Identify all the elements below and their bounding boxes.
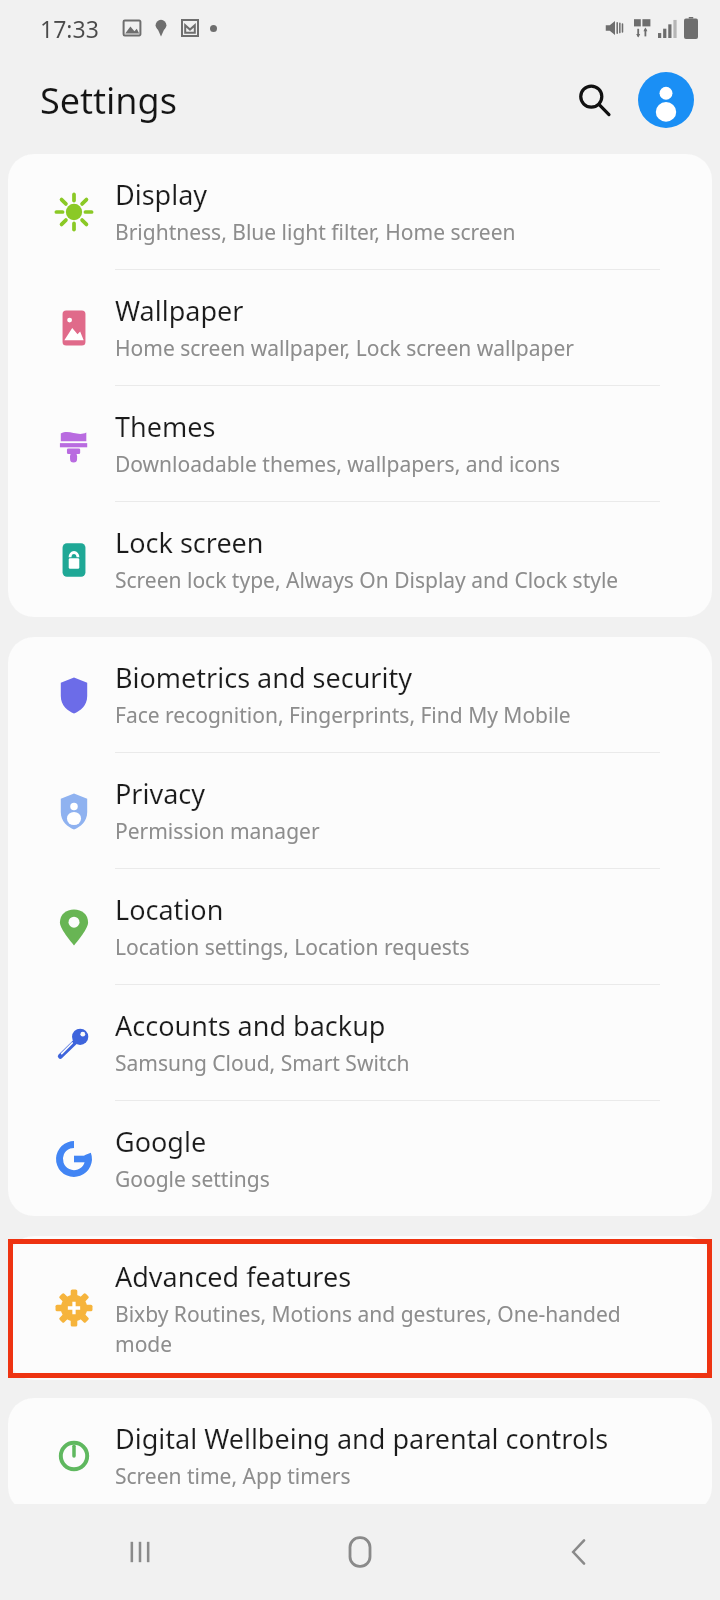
button[interactable]: Location <box>8 869 712 984</box>
button[interactable]: Google <box>8 1101 712 1216</box>
button[interactable]: Recent apps <box>60 1504 220 1600</box>
button[interactable]: Wallpaper <box>8 270 712 385</box>
staticText: Brightness, Blue light filter, Home scre… <box>115 218 516 247</box>
button[interactable]: Themes <box>8 386 712 501</box>
staticText: Privacy <box>115 775 206 812</box>
staticText: 17:33 <box>40 13 99 44</box>
staticText: Screen lock type, Always On Display and … <box>115 566 619 595</box>
staticText: Settings <box>40 76 177 125</box>
button[interactable]: Display <box>8 154 712 269</box>
button[interactable]: Back <box>500 1504 660 1600</box>
staticText: Lock screen <box>115 524 264 561</box>
button[interactable]: Biometrics and security <box>8 637 712 752</box>
button[interactable]: Advanced features <box>8 1236 712 1380</box>
staticText: Location <box>115 891 224 928</box>
staticText: Advanced features <box>115 1258 352 1295</box>
button[interactable]: Search <box>562 68 626 132</box>
staticText: Wallpaper <box>115 292 244 329</box>
staticText: Google <box>115 1123 207 1160</box>
button[interactable]: Privacy <box>8 753 712 868</box>
staticText: Accounts and backup <box>115 1007 386 1044</box>
staticText: Permission manager <box>115 817 320 846</box>
staticText: Location settings, Location requests <box>115 933 470 962</box>
staticText: Screen time, App timers <box>115 1462 351 1491</box>
staticText: Downloadable themes, wallpapers, and ico… <box>115 450 561 479</box>
staticText: Home screen wallpaper, Lock screen wallp… <box>115 334 574 363</box>
staticText: Face recognition, Fingerprints, Find My … <box>115 701 571 730</box>
staticText: Samsung Cloud, Smart Switch <box>115 1049 410 1078</box>
staticText: Themes <box>115 408 216 445</box>
button[interactable]: Account <box>638 72 694 128</box>
staticText: Google settings <box>115 1165 270 1194</box>
staticText: Display <box>115 176 208 213</box>
staticText: Biometrics and security <box>115 659 412 696</box>
button[interactable]: Accounts and backup <box>8 985 712 1100</box>
button[interactable]: Home <box>280 1504 440 1600</box>
button[interactable]: Digital Wellbeing and parental controls <box>8 1398 712 1513</box>
button[interactable]: Lock screen <box>8 502 712 617</box>
staticText: Bixby Routines, Motions and gestures, On… <box>115 1300 682 1358</box>
staticText: Digital Wellbeing and parental controls <box>115 1420 609 1457</box>
